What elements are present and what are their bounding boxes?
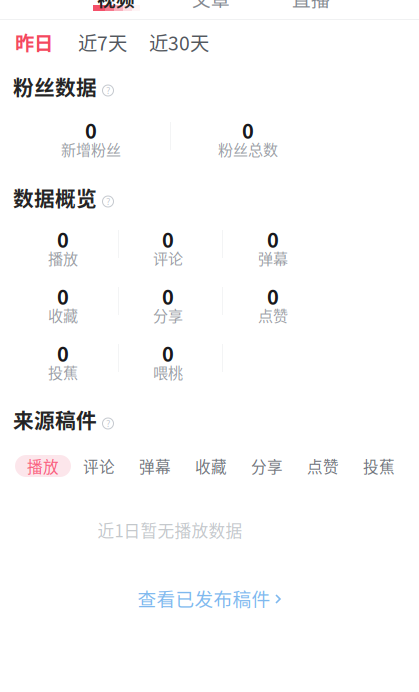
staticText: 昨日	[15, 28, 53, 56]
button[interactable]: 关于粉丝数据	[102, 84, 114, 96]
staticText: 0	[267, 224, 279, 253]
staticText: 喂桃	[153, 361, 183, 383]
staticText: 收藏	[195, 455, 227, 477]
staticText: 播放	[27, 455, 59, 477]
staticText: 0	[57, 224, 69, 253]
staticText: ?	[106, 83, 110, 97]
button[interactable]: 弹幕	[127, 455, 183, 477]
button[interactable]: 直播	[266, 0, 356, 12]
staticText: 收藏	[48, 304, 78, 326]
button[interactable]: 评论	[71, 455, 127, 477]
staticText: 来源稿件	[13, 404, 97, 434]
staticText: 0	[267, 281, 279, 310]
staticText: ?	[106, 416, 110, 430]
staticText: 点赞	[258, 304, 288, 326]
staticText: 近7天	[78, 28, 127, 56]
button[interactable]: 昨日	[1, 27, 69, 57]
button[interactable]: 关于来源稿件	[102, 417, 114, 429]
staticText: 投蕉	[363, 455, 395, 477]
staticText: 弹幕	[258, 247, 288, 269]
staticText: 0	[242, 115, 254, 144]
staticText: 数据概览	[13, 182, 97, 212]
staticText: 新增粉丝	[61, 138, 121, 160]
button[interactable]: 播放	[15, 455, 71, 477]
staticText: 0	[162, 224, 174, 253]
button[interactable]: 近30天	[135, 27, 227, 57]
button[interactable]: 点赞	[295, 455, 351, 477]
button[interactable]: 视频	[71, 0, 161, 12]
button[interactable]: 文章	[166, 0, 256, 12]
staticText: 投蕉	[48, 361, 78, 383]
staticText: 近30天	[149, 28, 209, 56]
staticText: 0	[57, 281, 69, 310]
button[interactable]: 分享	[239, 455, 295, 477]
staticText: ?	[106, 194, 110, 208]
staticText: 0	[162, 281, 174, 310]
staticText: 文章	[192, 0, 230, 12]
staticText: 粉丝数据	[13, 71, 97, 101]
button[interactable]: 投蕉	[351, 455, 407, 477]
staticText: 近1日暂无播放数据	[97, 518, 242, 542]
staticText: 0	[57, 338, 69, 367]
staticText: 弹幕	[139, 455, 171, 477]
button[interactable]: 近7天	[64, 27, 144, 57]
staticText: 播放	[48, 247, 78, 269]
staticText: 分享	[153, 304, 183, 326]
button[interactable]: 查看已发布稿件	[0, 585, 419, 611]
button[interactable]: 收藏	[183, 455, 239, 477]
staticText: 粉丝总数	[218, 138, 278, 160]
staticText: 分享	[251, 455, 283, 477]
staticText: 评论	[153, 247, 183, 269]
button[interactable]: 关于数据概览	[102, 195, 114, 207]
staticText: 评论	[83, 455, 115, 477]
staticText: 0	[162, 338, 174, 367]
staticText: 视频	[97, 0, 135, 12]
staticText: 0	[85, 115, 97, 144]
staticText: 直播	[292, 0, 330, 12]
staticText: 查看已发布稿件	[137, 584, 270, 611]
staticText: 点赞	[307, 455, 339, 477]
